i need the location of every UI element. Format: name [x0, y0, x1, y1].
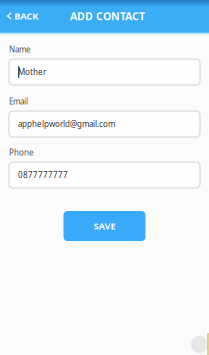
- staticText: ADD CONTACT: [70, 9, 145, 23]
- staticText: Email: [9, 96, 28, 107]
- staticText: 0877777777: [18, 170, 68, 180]
- button[interactable]: SAVE: [63, 211, 145, 241]
- button[interactable]: apphelpworld@gmail.com: [9, 111, 200, 137]
- staticText: Mother: [18, 67, 46, 77]
- staticText: Phone: [9, 147, 34, 158]
- button[interactable]: Back: [0, 0, 70, 32]
- button[interactable]: Mother: [9, 59, 200, 85]
- staticText: Name: [9, 44, 31, 55]
- button[interactable]: 0877777777: [9, 162, 200, 188]
- staticText: SAVE: [93, 220, 115, 232]
- staticText: BACK: [14, 10, 38, 22]
- staticText: apphelpworld@gmail.com: [18, 119, 115, 129]
